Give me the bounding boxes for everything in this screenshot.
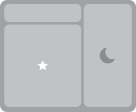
button[interactable]: Top [4,4,81,22]
button[interactable]: Favorite [4,24,81,107]
button[interactable]: Moon [84,4,132,107]
